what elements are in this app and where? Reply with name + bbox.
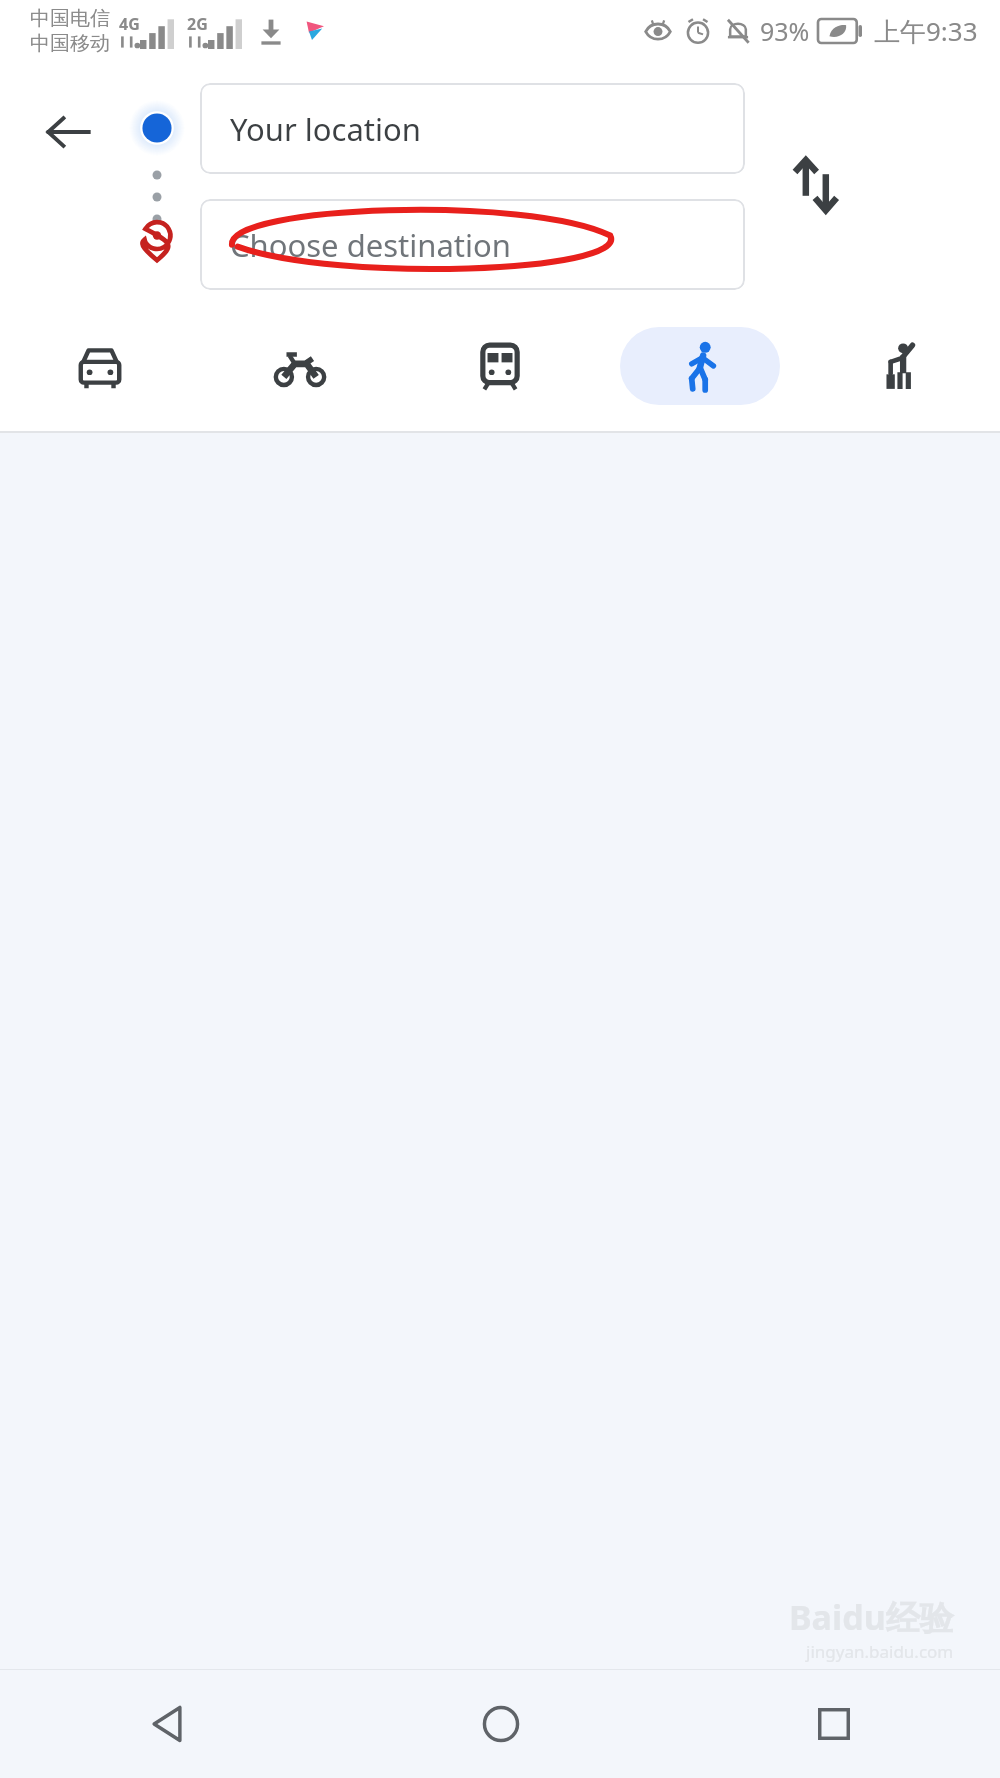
staticText: 2G [187, 13, 208, 35]
button[interactable]: Choose destination [200, 199, 745, 290]
staticText: 93% [760, 14, 810, 48]
button[interactable]: Back [28, 92, 108, 172]
button[interactable]: Walking [620, 327, 780, 405]
button[interactable]: Back [0, 1670, 334, 1778]
button[interactable]: Driving [20, 327, 180, 405]
staticText: 4G [119, 13, 140, 35]
staticText: 中国移动 [30, 31, 110, 56]
staticText: Baidu经验 [789, 1594, 954, 1640]
button[interactable]: Your location [200, 83, 745, 174]
button[interactable]: Motorcycle [220, 327, 380, 405]
button[interactable]: Transit [420, 327, 580, 405]
button[interactable]: Home [334, 1670, 667, 1778]
button[interactable]: Ride service [820, 327, 980, 405]
staticText: Your location [230, 108, 421, 150]
button[interactable]: Recents [667, 1670, 1000, 1778]
button[interactable]: Swap start and destination [772, 142, 858, 228]
staticText: jingyan.baidu.com [806, 1640, 954, 1663]
staticText: Choose destination [230, 224, 511, 266]
staticText: 上午9:33 [874, 13, 978, 49]
staticText: 中国电信 [30, 6, 110, 31]
